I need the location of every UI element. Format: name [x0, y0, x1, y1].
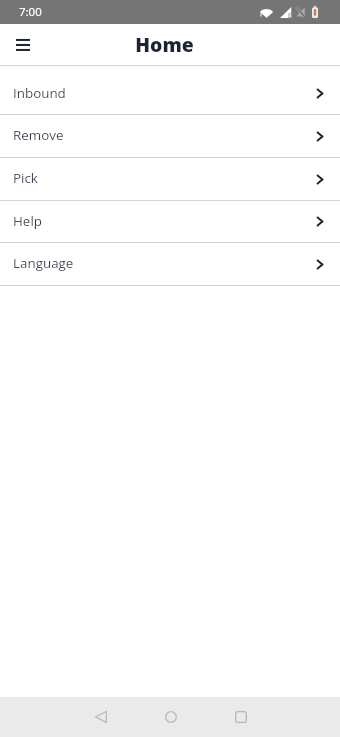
staticText: Pick	[13, 169, 317, 187]
staticText: Remove	[13, 126, 317, 144]
staticText: Language	[13, 254, 317, 272]
staticText: Help	[13, 212, 317, 230]
button[interactable]: Language	[0, 243, 340, 285]
button[interactable]: Home	[151, 697, 191, 737]
staticText: 7:00	[19, 4, 42, 20]
button[interactable]: Recent apps	[221, 697, 261, 737]
staticText: Home	[135, 31, 194, 57]
button[interactable]: Help	[0, 201, 340, 242]
button[interactable]: Inbound	[0, 73, 340, 114]
button[interactable]: Back	[81, 697, 121, 737]
button[interactable]: Remove	[0, 115, 340, 157]
button[interactable]: Pick	[0, 158, 340, 200]
staticText: Inbound	[13, 84, 317, 102]
button[interactable]: Open navigation menu	[5, 27, 41, 63]
